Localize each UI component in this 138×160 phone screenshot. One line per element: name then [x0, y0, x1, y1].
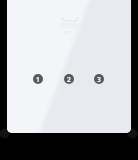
staticText: 1 [36, 75, 40, 84]
button[interactable]: Step 1 [33, 74, 43, 84]
staticText: 3 [97, 75, 101, 84]
button[interactable]: Step 3 [94, 74, 104, 84]
staticText: 2 [67, 75, 71, 84]
button[interactable]: Step 2 [64, 74, 74, 84]
